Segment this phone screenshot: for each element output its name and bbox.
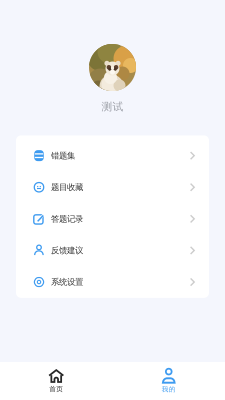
button[interactable]: 首页 — [0, 369, 112, 393]
button[interactable]: 系统设置 — [16, 266, 209, 298]
staticText: 题目收藏 — [51, 182, 83, 192]
button[interactable]: 题目收藏 — [16, 171, 209, 203]
staticText: 我的 — [162, 385, 176, 393]
staticText: 反馈建议 — [51, 245, 83, 256]
button[interactable]: 答题记录 — [16, 203, 209, 235]
button[interactable]: 错题集 — [16, 140, 209, 171]
staticText: 系统设置 — [51, 277, 83, 287]
staticText: 答题记录 — [51, 213, 83, 224]
button[interactable]: 我的 — [112, 368, 225, 393]
staticText: 测试 — [101, 100, 123, 113]
button[interactable]: 反馈建议 — [16, 235, 209, 266]
staticText: 错题集 — [51, 150, 75, 161]
staticText: 首页 — [49, 385, 63, 393]
